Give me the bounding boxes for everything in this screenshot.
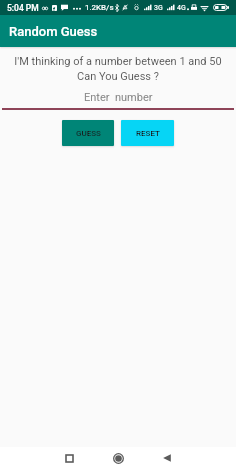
staticText: f [53,5,56,11]
button[interactable]: Back [156,447,178,469]
staticText: 1.2KB/s [85,3,114,12]
button[interactable]: RESET [121,120,174,146]
button[interactable]: Recent apps [58,447,80,469]
staticText: 5:04 PM [7,3,39,13]
button[interactable]: GUESS [62,120,114,146]
staticText: Random Guess [9,24,98,39]
staticText: RESET [136,129,160,138]
staticText: GUESS [76,129,101,138]
staticText: 4G [177,4,186,12]
staticText: I'M thinking of a number between 1 and 5… [6,55,230,83]
staticText: 3G [154,4,163,12]
button[interactable]: Home [107,447,129,469]
staticText: Enter number [84,91,153,104]
